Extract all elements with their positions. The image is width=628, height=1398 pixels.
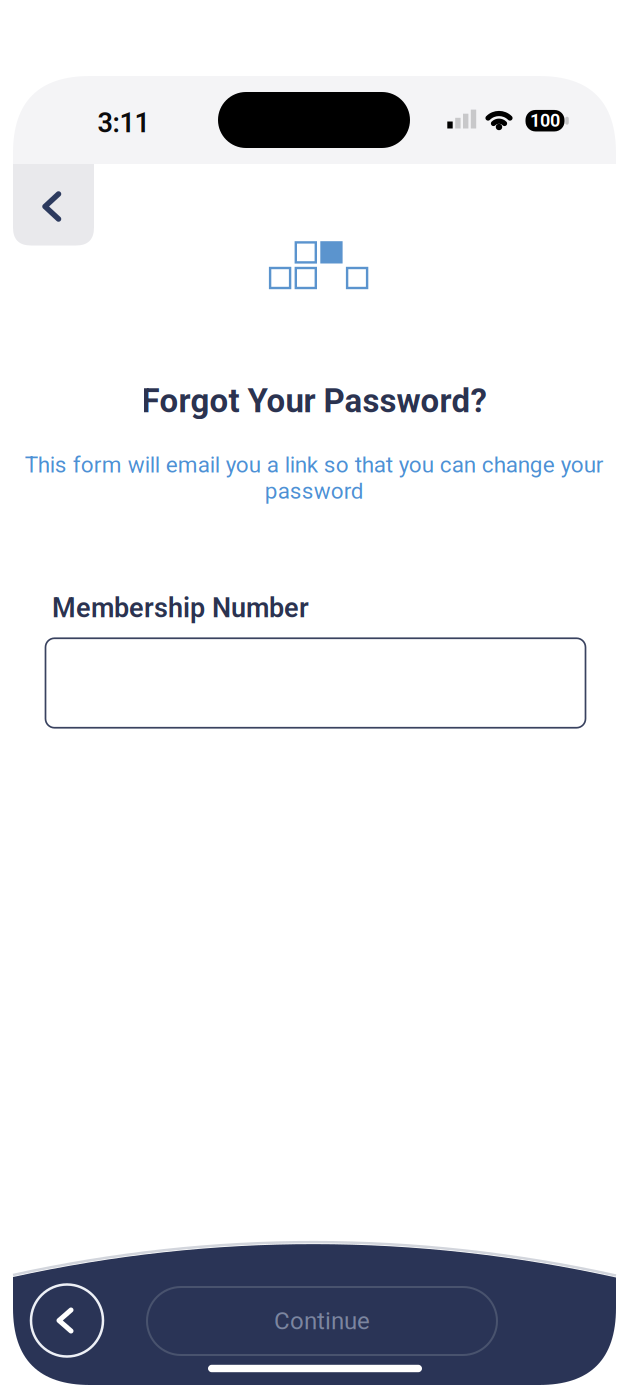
staticText: 3:11 [97,107,149,139]
button[interactable]: Continue [147,1287,497,1355]
staticText: Membership Number [52,592,309,624]
button[interactable] [31,1284,103,1356]
staticText: Continue [274,1307,370,1335]
staticText: 100 [530,110,560,131]
button[interactable] [13,164,94,245]
staticText: This form will email you a link so that … [24,452,603,504]
button[interactable] [45,638,585,728]
staticText: Forgot Your Password? [141,382,486,420]
